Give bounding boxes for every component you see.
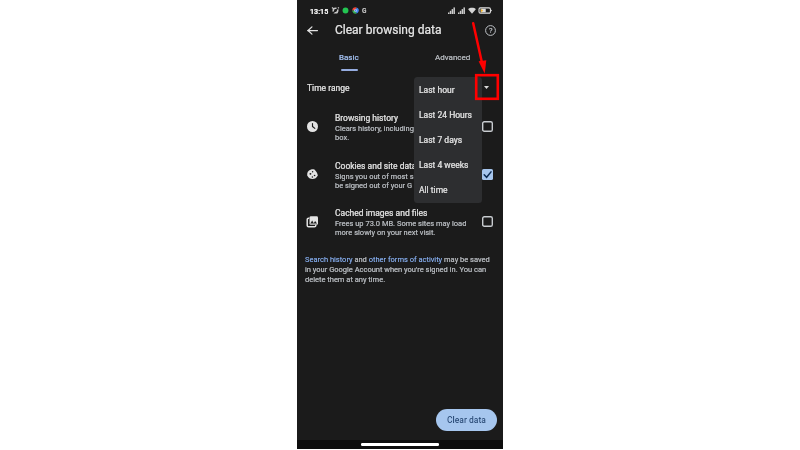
staticText: Search history and other forms of activi… [305, 255, 497, 284]
button[interactable]: Last 24 Hours [414, 102, 482, 127]
staticText: be signed out of your G [335, 181, 413, 190]
staticText: Cookies and site data [335, 161, 417, 171]
staticText: Clear data [447, 415, 486, 425]
staticText: Signs you out of most s [335, 172, 414, 181]
staticText: box. [335, 133, 350, 142]
button[interactable]: Last 4 weeks [414, 152, 482, 177]
staticText: more slowly on your next visit. [335, 228, 436, 237]
button[interactable]: Cookies and site data [297, 154, 503, 199]
staticText: Advanced [435, 53, 471, 62]
staticText: All time [419, 185, 448, 195]
staticText: Last 4 weeks [419, 160, 469, 170]
staticText: ? [489, 26, 493, 35]
button[interactable]: Basic [297, 44, 401, 72]
staticText: G [362, 7, 367, 15]
button[interactable]: Help [482, 22, 499, 39]
button[interactable]: Back [303, 21, 322, 40]
staticText: 13:15 [310, 7, 329, 15]
staticText: Last 7 days [419, 135, 463, 145]
staticText: Last 24 Hours [419, 110, 473, 120]
staticText: Clears history, including [335, 124, 414, 133]
button[interactable]: All time [414, 177, 482, 202]
button[interactable]: Time range [297, 74, 503, 102]
button[interactable]: Clear data [436, 409, 497, 431]
staticText: Cached images and files [335, 208, 428, 218]
button[interactable]: Cached images and files [297, 201, 503, 246]
staticText: Clear browsing data [335, 23, 442, 37]
button[interactable]: Advanced [401, 44, 505, 72]
staticText: Basic [339, 53, 359, 62]
staticText: Last hour [419, 85, 455, 95]
staticText: Browsing history [335, 113, 399, 123]
button[interactable]: Last 7 days [414, 127, 482, 152]
staticText: Frees up 73.0 MB. Some sites may load [335, 219, 467, 228]
button[interactable]: Browsing history [297, 106, 503, 151]
button[interactable]: Last hour [414, 77, 482, 102]
staticText: Time range [307, 83, 350, 93]
